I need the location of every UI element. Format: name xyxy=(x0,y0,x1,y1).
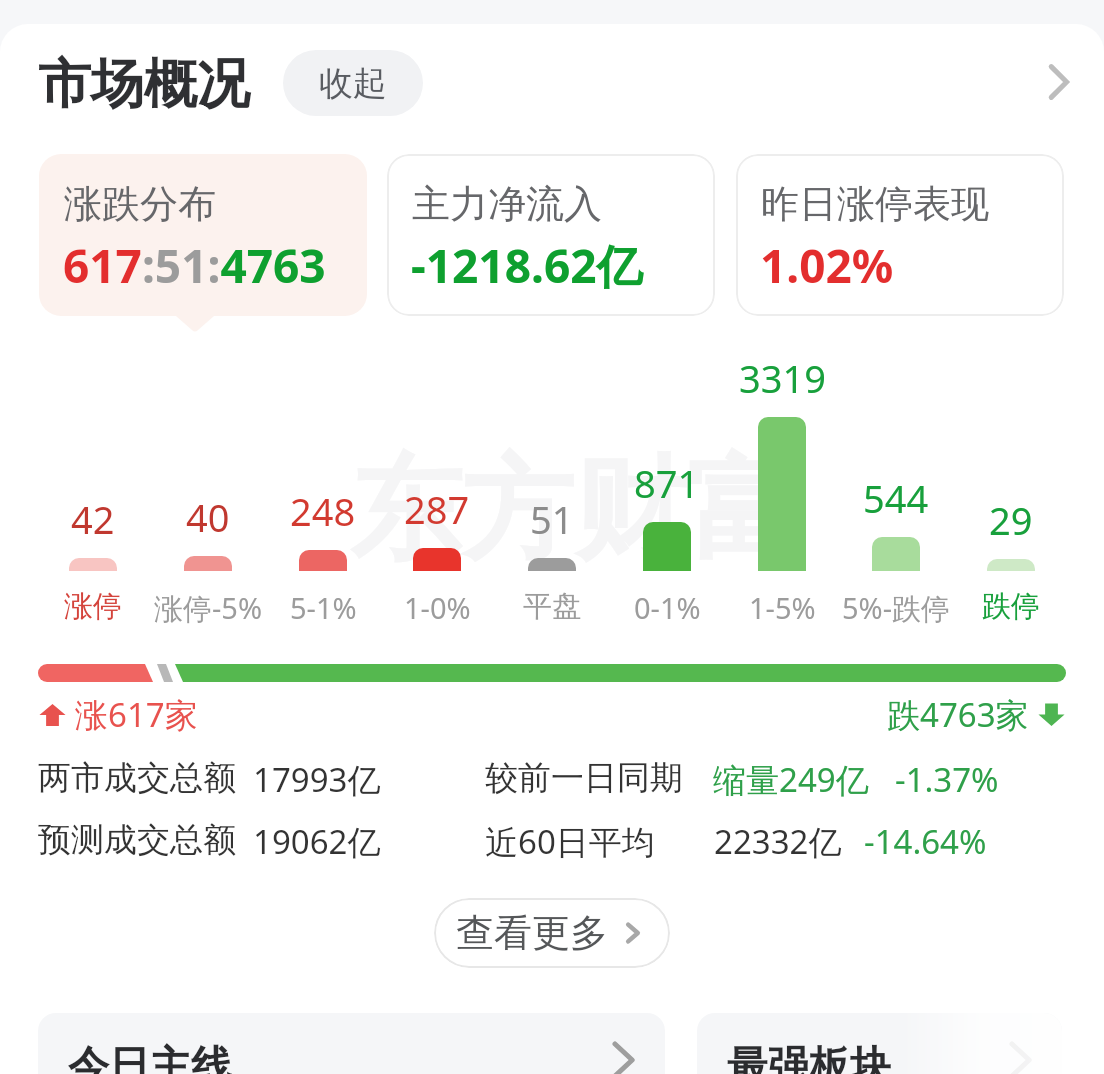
staticText: 涨停 xyxy=(64,588,122,625)
button[interactable] xyxy=(266,400,380,620)
button[interactable]: 收起 xyxy=(283,50,423,116)
staticText: 东方财富 xyxy=(350,440,798,581)
staticText: 1-0% xyxy=(404,588,471,627)
button[interactable] xyxy=(36,400,150,620)
staticText: 较前一日同期 xyxy=(485,757,683,799)
staticText: 平盘 xyxy=(523,588,581,625)
staticText: 涨617家 xyxy=(75,692,198,737)
staticText: 跌4763家 xyxy=(887,692,1029,737)
staticText: 跌停 xyxy=(982,588,1040,625)
staticText: 市场概况 xyxy=(38,51,250,118)
staticText: 近60日平均 xyxy=(485,819,655,864)
staticText: 5%-跌停 xyxy=(842,588,951,628)
staticText: 617:51:4763 xyxy=(63,234,326,297)
staticText: 22332亿 xyxy=(714,819,842,864)
staticText: 5-1% xyxy=(290,588,357,627)
staticText: 0-1% xyxy=(634,588,701,627)
staticText: 42 xyxy=(71,493,115,545)
staticText: 涨跌分布 xyxy=(64,180,216,228)
staticText: 1.02% xyxy=(760,234,894,297)
button[interactable] xyxy=(725,400,839,620)
staticText: 今日主线 xyxy=(68,1041,232,1074)
staticText: 17993亿 xyxy=(253,757,381,802)
button[interactable]: 最强板块 xyxy=(697,1013,1062,1074)
staticText: 最强板块 xyxy=(727,1041,891,1074)
staticText: 544 xyxy=(863,472,929,524)
staticText: 查看更多 xyxy=(456,909,608,957)
staticText: 40 xyxy=(186,491,230,543)
staticText: 871 xyxy=(634,457,700,509)
button[interactable] xyxy=(839,400,953,620)
button[interactable]: Expand market overview xyxy=(1025,50,1089,114)
staticText: 1-5% xyxy=(749,588,816,627)
button[interactable] xyxy=(610,400,724,620)
button[interactable] xyxy=(495,400,609,620)
button[interactable]: 昨日涨停表现 xyxy=(736,154,1064,316)
button[interactable]: Open 今日主线 xyxy=(603,1040,643,1074)
button[interactable]: Open 最强板块 xyxy=(1000,1040,1040,1074)
staticText: 缩量249亿 xyxy=(713,757,869,802)
staticText: 收起 xyxy=(319,62,387,105)
staticText: 3319 xyxy=(739,352,826,404)
button[interactable]: 主力净流入 xyxy=(387,154,715,316)
staticText: -14.64% xyxy=(864,819,987,864)
staticText: -1.37% xyxy=(895,757,999,802)
staticText: 51 xyxy=(530,493,574,545)
staticText: 19062亿 xyxy=(253,819,381,864)
staticText: -1218.62亿 xyxy=(411,234,643,297)
staticText: 248 xyxy=(290,485,356,537)
button[interactable]: 查看更多 xyxy=(434,898,670,968)
staticText: 29 xyxy=(989,494,1033,546)
button[interactable]: 涨跌分布 xyxy=(39,154,367,316)
staticText: 主力净流入 xyxy=(412,180,602,228)
staticText: 昨日涨停表现 xyxy=(761,180,989,228)
staticText: 预测成交总额 xyxy=(38,819,236,861)
button[interactable] xyxy=(954,400,1068,620)
staticText: 287 xyxy=(404,483,470,535)
button[interactable] xyxy=(380,400,494,620)
button[interactable]: 今日主线 xyxy=(38,1013,665,1074)
button[interactable] xyxy=(151,400,265,620)
staticText: 涨停-5% xyxy=(154,588,263,628)
staticText: 两市成交总额 xyxy=(38,757,236,799)
